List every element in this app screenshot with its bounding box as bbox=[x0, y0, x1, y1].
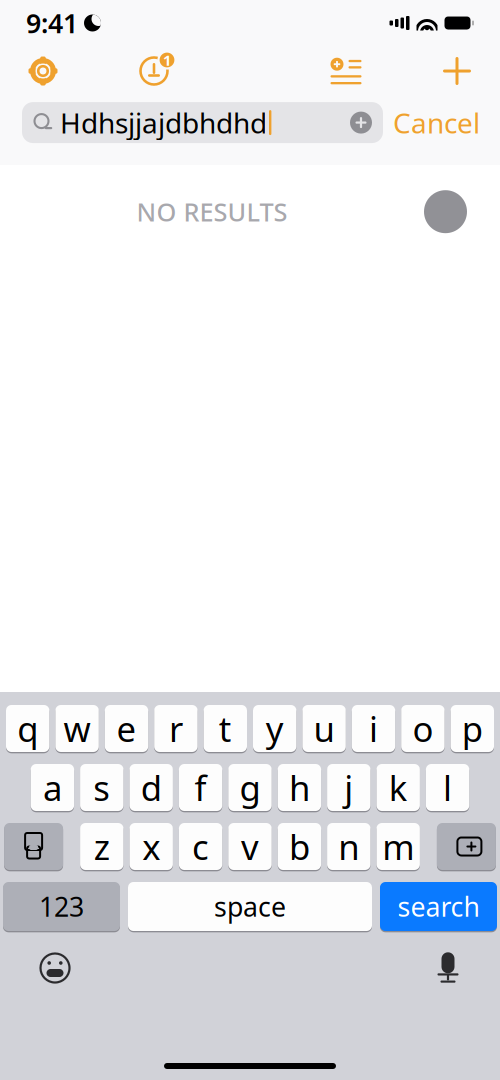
staticText: search bbox=[397, 889, 479, 924]
button[interactable]: d bbox=[129, 764, 173, 811]
button[interactable]: k bbox=[376, 764, 420, 811]
staticText: Cancel bbox=[393, 104, 480, 141]
button[interactable]: 123 bbox=[3, 882, 120, 931]
button[interactable]: Shift bbox=[4, 823, 63, 870]
staticText: k bbox=[389, 764, 408, 810]
staticText: 1 bbox=[163, 50, 171, 70]
button[interactable]: z bbox=[80, 823, 123, 870]
button[interactable]: space bbox=[128, 882, 372, 931]
button[interactable]: Add to playlist bbox=[322, 51, 370, 91]
staticText: NO RESULTS bbox=[136, 195, 287, 228]
button[interactable]: Dictation bbox=[426, 943, 470, 992]
staticText: m bbox=[382, 823, 414, 869]
button[interactable]: Emoji bbox=[30, 943, 80, 993]
button[interactable]: j bbox=[327, 764, 370, 811]
staticText: 123 bbox=[39, 889, 84, 924]
button[interactable]: f bbox=[179, 764, 222, 811]
button[interactable]: y bbox=[253, 705, 296, 752]
button[interactable]: Settings bbox=[20, 51, 66, 91]
staticText: l bbox=[443, 764, 452, 810]
button[interactable]: Cancel bbox=[393, 96, 480, 149]
staticText: a bbox=[43, 764, 62, 810]
button[interactable]: Downloads, 1 item bbox=[128, 51, 180, 91]
button[interactable]: search bbox=[380, 882, 497, 931]
staticText: 9:41 bbox=[26, 5, 78, 41]
button[interactable]: c bbox=[179, 823, 222, 870]
button[interactable]: p bbox=[451, 705, 494, 752]
button[interactable]: e bbox=[105, 705, 148, 752]
button[interactable]: s bbox=[80, 764, 123, 811]
staticText: v bbox=[241, 823, 259, 869]
staticText: g bbox=[239, 764, 260, 810]
staticText: i bbox=[369, 705, 378, 751]
staticText: r bbox=[169, 705, 183, 751]
staticText: w bbox=[64, 705, 91, 751]
button[interactable]: g bbox=[228, 764, 272, 811]
button[interactable]: n bbox=[327, 823, 370, 870]
button[interactable]: x bbox=[129, 823, 173, 870]
staticText: p bbox=[462, 705, 483, 751]
staticText: z bbox=[94, 823, 110, 869]
staticText: q bbox=[17, 705, 38, 751]
button[interactable]: m bbox=[376, 823, 420, 870]
button[interactable]: Hdhsjjajdbhdhd bbox=[22, 102, 383, 143]
staticText: space bbox=[214, 889, 286, 924]
button[interactable]: a bbox=[31, 764, 74, 811]
button[interactable]: o bbox=[401, 705, 445, 752]
button[interactable]: q bbox=[6, 705, 49, 752]
staticText: x bbox=[142, 823, 160, 869]
button[interactable]: u bbox=[302, 705, 346, 752]
button[interactable]: i bbox=[352, 705, 395, 752]
staticText: f bbox=[195, 764, 207, 810]
button[interactable]: Add bbox=[434, 51, 480, 91]
staticText: h bbox=[289, 764, 310, 810]
button[interactable]: l bbox=[426, 764, 469, 811]
staticText: j bbox=[344, 764, 353, 810]
button[interactable]: w bbox=[55, 705, 99, 752]
staticText: c bbox=[192, 823, 209, 869]
staticText: o bbox=[412, 705, 433, 751]
staticText: e bbox=[116, 705, 136, 751]
staticText: d bbox=[141, 764, 162, 810]
staticText: t bbox=[219, 705, 232, 751]
button[interactable]: h bbox=[278, 764, 321, 811]
staticText: n bbox=[338, 823, 359, 869]
button[interactable]: r bbox=[154, 705, 198, 752]
button[interactable]: v bbox=[228, 823, 272, 870]
staticText: s bbox=[93, 764, 110, 810]
staticText: Hdhsjjajdbhdhd bbox=[60, 104, 267, 141]
staticText: y bbox=[266, 705, 284, 751]
staticText: b bbox=[289, 823, 310, 869]
staticText: u bbox=[314, 705, 335, 751]
button[interactable]: Delete bbox=[437, 823, 496, 870]
button[interactable]: t bbox=[204, 705, 247, 752]
button[interactable]: b bbox=[278, 823, 321, 870]
